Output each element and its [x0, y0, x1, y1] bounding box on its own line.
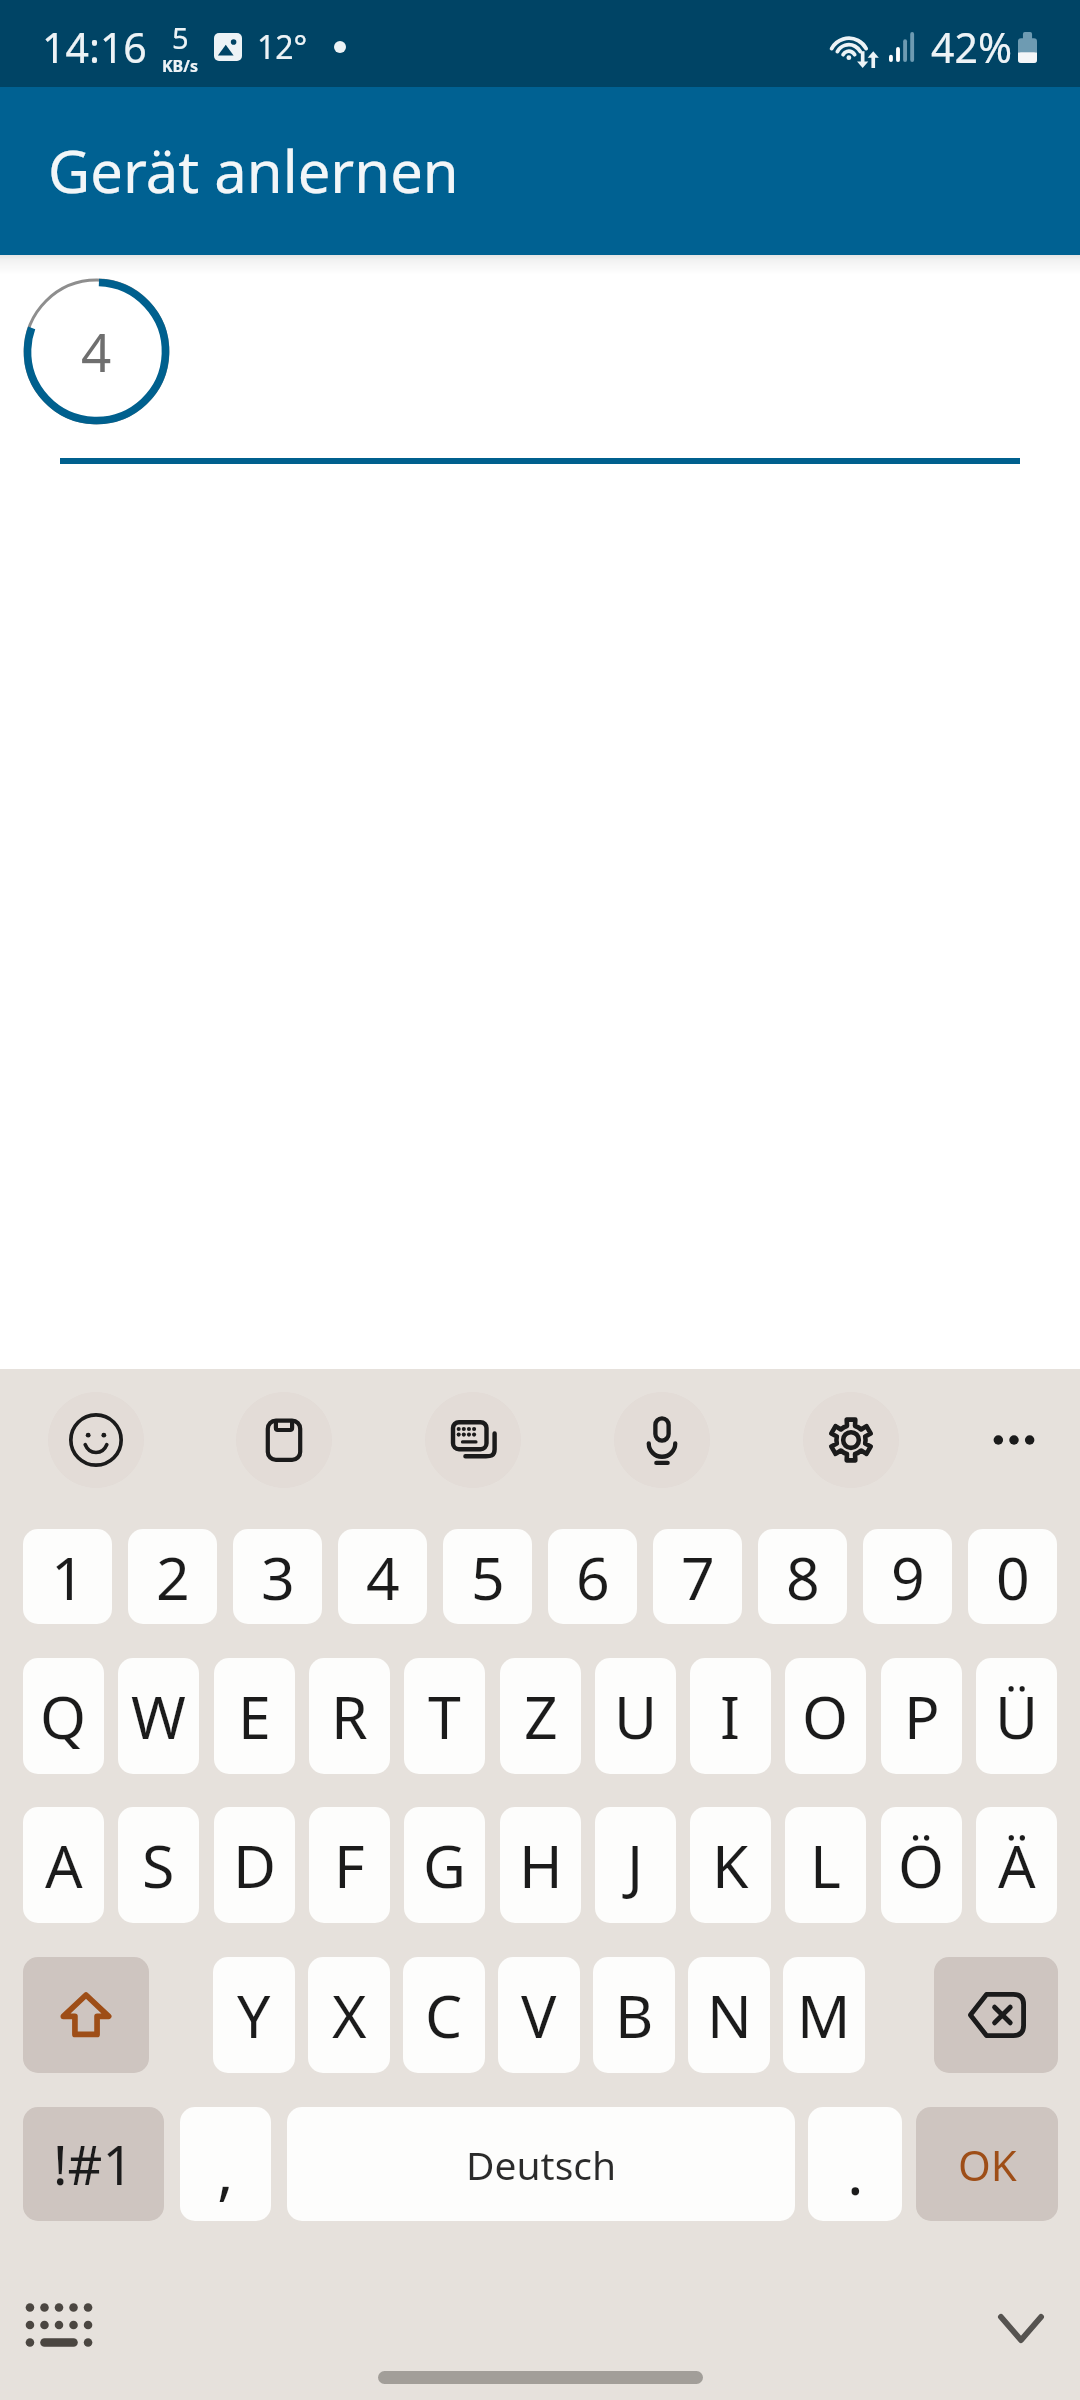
button[interactable]: Hide keyboard	[998, 2314, 1044, 2343]
staticText: M	[797, 1975, 851, 2055]
button[interactable]: Q	[23, 1658, 104, 1774]
staticText: W	[131, 1676, 186, 1756]
staticText: T	[428, 1676, 461, 1756]
staticText: 3	[261, 1537, 295, 1617]
staticText: 8	[786, 1537, 820, 1617]
button[interactable]: Settings	[803, 1392, 899, 1488]
staticText: Z	[524, 1676, 558, 1756]
staticText: V	[521, 1975, 557, 2055]
button[interactable]: Emoji	[48, 1392, 144, 1488]
staticText: C	[425, 1975, 463, 2055]
button[interactable]: 1	[23, 1529, 112, 1624]
button[interactable]: I	[690, 1658, 771, 1774]
button[interactable]: N	[688, 1957, 770, 2073]
button[interactable]: 3	[233, 1529, 322, 1624]
staticText: I	[720, 1676, 741, 1756]
staticText: ,	[217, 2128, 234, 2212]
button[interactable]: X	[308, 1957, 390, 2073]
staticText: 5	[471, 1537, 505, 1617]
button[interactable]: O	[785, 1658, 866, 1774]
button[interactable]: F	[309, 1807, 390, 1923]
staticText: O	[802, 1676, 849, 1756]
staticText: Deutsch	[466, 2138, 617, 2191]
staticText: E	[238, 1676, 271, 1756]
button[interactable]: 0	[968, 1529, 1057, 1624]
button[interactable]: V	[498, 1957, 580, 2073]
button[interactable]: ,	[180, 2107, 271, 2221]
button[interactable]: 8	[758, 1529, 847, 1624]
staticText: F	[334, 1825, 365, 1905]
staticText: 12°	[257, 25, 308, 69]
button[interactable]: M	[783, 1957, 865, 2073]
staticText: 4	[366, 1537, 400, 1617]
button[interactable]: R	[309, 1658, 390, 1774]
staticText: 6	[576, 1537, 610, 1617]
staticText: H	[519, 1825, 563, 1905]
button[interactable]: S	[118, 1807, 199, 1923]
button[interactable]: OK	[916, 2107, 1058, 2221]
button[interactable]: C	[403, 1957, 485, 2073]
staticText: 4	[81, 315, 112, 387]
staticText: 0	[996, 1537, 1030, 1617]
staticText: Y	[237, 1975, 271, 2055]
button[interactable]: 5	[443, 1529, 532, 1624]
button[interactable]: E	[214, 1658, 295, 1774]
staticText: OK	[958, 2136, 1017, 2193]
staticText: L	[810, 1825, 841, 1905]
staticText: Gerät anlernen	[48, 131, 459, 210]
staticText: D	[233, 1825, 277, 1905]
button[interactable]: Shift	[23, 1957, 149, 2073]
staticText: S	[142, 1825, 175, 1905]
button[interactable]: Ü	[976, 1658, 1057, 1774]
button[interactable]: .	[808, 2107, 902, 2221]
button[interactable]: 2	[128, 1529, 217, 1624]
button[interactable]: T	[404, 1658, 485, 1774]
staticText: B	[615, 1975, 654, 2055]
button[interactable]: Deutsch	[287, 2107, 795, 2221]
button[interactable]: U	[595, 1658, 676, 1774]
button[interactable]: Y	[213, 1957, 295, 2073]
button[interactable]: H	[500, 1807, 581, 1923]
button[interactable]: D	[214, 1807, 295, 1923]
button[interactable]: L	[785, 1807, 866, 1923]
button[interactable]: J	[595, 1807, 676, 1923]
button[interactable]: W	[118, 1658, 199, 1774]
button[interactable]: 7	[653, 1529, 742, 1624]
staticText: 5	[172, 18, 189, 57]
button[interactable]: Backspace	[934, 1957, 1058, 2073]
button[interactable]: Keyboard modes	[425, 1392, 521, 1488]
staticText: .	[847, 2129, 864, 2213]
staticText: 1	[51, 1537, 85, 1617]
button[interactable]: Clipboard	[236, 1392, 332, 1488]
staticText: R	[331, 1676, 368, 1756]
staticText: N	[707, 1975, 752, 2055]
staticText: P	[904, 1676, 940, 1756]
staticText: !#1	[53, 2127, 134, 2201]
button[interactable]: Change keyboard	[24, 2302, 94, 2348]
staticText: 14:16	[42, 19, 147, 75]
button[interactable]: 4	[338, 1529, 427, 1624]
button[interactable]: Symbols	[23, 2107, 164, 2221]
button[interactable]: Ä	[976, 1807, 1057, 1923]
button[interactable]: PIN eingeben	[60, 290, 1020, 464]
staticText: X	[332, 1975, 367, 2055]
staticText: K	[712, 1825, 749, 1905]
button[interactable]: B	[593, 1957, 675, 2073]
button[interactable]: 9	[863, 1529, 952, 1624]
staticText: J	[627, 1825, 644, 1905]
button[interactable]: Voice input	[614, 1392, 710, 1488]
button[interactable]: K	[690, 1807, 771, 1923]
button[interactable]: Ö	[881, 1807, 962, 1923]
staticText: Ö	[898, 1825, 945, 1905]
button[interactable]: G	[404, 1807, 485, 1923]
button[interactable]: 6	[548, 1529, 637, 1624]
button[interactable]: A	[23, 1807, 104, 1923]
staticText: 9	[891, 1537, 925, 1617]
staticText: G	[423, 1825, 466, 1905]
staticText: KB/s	[162, 55, 198, 77]
button[interactable]: P	[881, 1658, 962, 1774]
button[interactable]: More options	[966, 1392, 1062, 1488]
staticText: 2	[156, 1537, 190, 1617]
staticText: 42%	[931, 19, 1012, 75]
button[interactable]: Z	[500, 1658, 581, 1774]
